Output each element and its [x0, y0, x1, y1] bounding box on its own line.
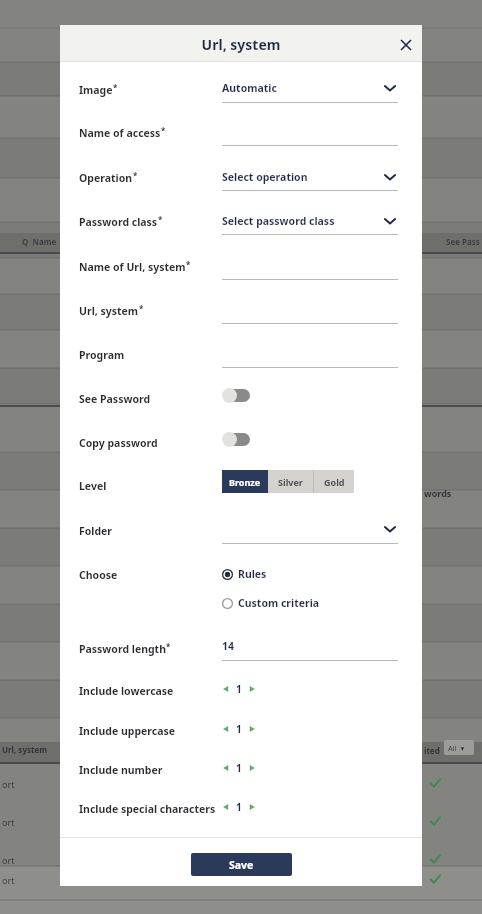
button[interactable]: Increase lowercase [247, 683, 257, 695]
staticText: 1 [236, 722, 242, 736]
staticText: Include special characters [79, 802, 216, 816]
staticText: 14 [222, 639, 235, 653]
staticText: Custom criteria [238, 596, 320, 610]
staticText: 1 [236, 800, 242, 814]
staticText: * [158, 214, 163, 225]
staticText: Gold [324, 476, 345, 488]
button[interactable]: Custom criteria [222, 595, 320, 611]
staticText: Url, system [2, 744, 48, 755]
button[interactable]: Bronze [222, 470, 268, 493]
staticText: See Pass [446, 236, 480, 247]
button[interactable]: Decrease special characters [221, 801, 231, 813]
staticText: Copy password [79, 436, 158, 450]
staticText: ort [2, 778, 15, 790]
staticText: Program [79, 348, 125, 362]
button[interactable]: Open dropdown [382, 81, 398, 95]
button[interactable]: Decrease number [221, 762, 231, 774]
staticText: * [139, 303, 144, 314]
staticText: ited [424, 745, 440, 756]
staticText: Select password class [222, 214, 335, 228]
staticText: * [133, 170, 138, 181]
staticText: Save [229, 858, 254, 872]
staticText: words [424, 487, 452, 499]
button[interactable]: Open dropdown [382, 522, 398, 536]
staticText: See Password [79, 392, 151, 406]
staticText: Include lowercase [79, 684, 174, 698]
staticText: Url, system [79, 304, 139, 318]
staticText: * [166, 641, 171, 652]
button[interactable]: Copy password [222, 432, 252, 448]
button[interactable]: Decrease uppercase [221, 723, 231, 735]
button[interactable]: Close [396, 35, 416, 55]
staticText: Include uppercase [79, 724, 176, 738]
button[interactable]: Increase number [247, 762, 257, 774]
staticText: Password class [79, 215, 158, 229]
staticText: Choose [79, 568, 118, 582]
staticText: Automatic [222, 81, 277, 95]
staticText: CMD-994 [196, 874, 235, 886]
staticText: Rules [238, 567, 267, 581]
button[interactable]: Increase special characters [247, 801, 257, 813]
staticText: Level [79, 479, 107, 493]
button[interactable]: Save [191, 853, 292, 876]
staticText: Image [79, 83, 113, 97]
button[interactable]: Decrease lowercase [221, 683, 231, 695]
staticText: Folder [79, 524, 113, 538]
button[interactable]: Rules [222, 566, 267, 582]
staticText: Operation [79, 171, 133, 185]
staticText: Url, system [60, 35, 422, 54]
staticText: 1 [236, 761, 242, 775]
button[interactable]: See Password [222, 388, 252, 404]
button[interactable]: Increase uppercase [247, 723, 257, 735]
staticText: All ▾ [448, 743, 465, 753]
staticText: Bronze [229, 476, 261, 488]
staticText: ort [2, 854, 15, 866]
staticText: 1 [236, 682, 242, 696]
staticText: Name of access [79, 126, 161, 140]
button[interactable]: Open dropdown [382, 170, 398, 184]
button[interactable]: Open dropdown [382, 214, 398, 228]
button[interactable]: Gold [314, 470, 354, 493]
staticText: ort [2, 816, 15, 828]
button[interactable]: Silver [268, 470, 313, 493]
staticText: Q Name [22, 236, 57, 247]
button[interactable]: All ▾ [444, 740, 474, 755]
staticText: * [113, 82, 118, 93]
staticText: * [186, 259, 191, 270]
staticText: * [161, 125, 166, 136]
staticText: Name of Url, system [79, 260, 186, 274]
staticText: Silver [278, 476, 303, 488]
staticText: Select operation [222, 170, 308, 184]
staticText: ort [2, 874, 15, 886]
staticText: Password length [79, 642, 166, 656]
staticText: Include number [79, 763, 163, 777]
